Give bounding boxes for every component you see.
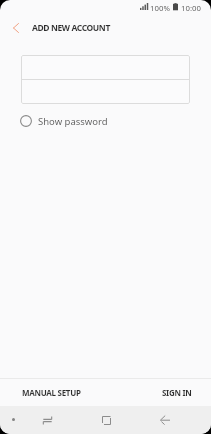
staticText: ADD NEW ACCOUNT [32, 22, 110, 34]
staticText: Show password [38, 115, 108, 128]
staticText: SIGN IN [162, 387, 192, 398]
button[interactable]: MANUAL SETUP [0, 379, 105, 406]
button[interactable] [21, 80, 190, 104]
button[interactable]: SIGN IN [105, 379, 211, 406]
button[interactable] [21, 55, 190, 79]
button[interactable]: Home [70, 406, 143, 434]
staticText: 100% [150, 3, 170, 14]
button[interactable]: Recents [24, 406, 70, 434]
staticText: MANUAL SETUP [22, 387, 81, 398]
button[interactable]: Back [143, 406, 187, 434]
staticText: 10:00 [181, 3, 201, 14]
button[interactable]: Show password [20, 112, 108, 130]
button[interactable]: Navigate up [6, 18, 26, 38]
